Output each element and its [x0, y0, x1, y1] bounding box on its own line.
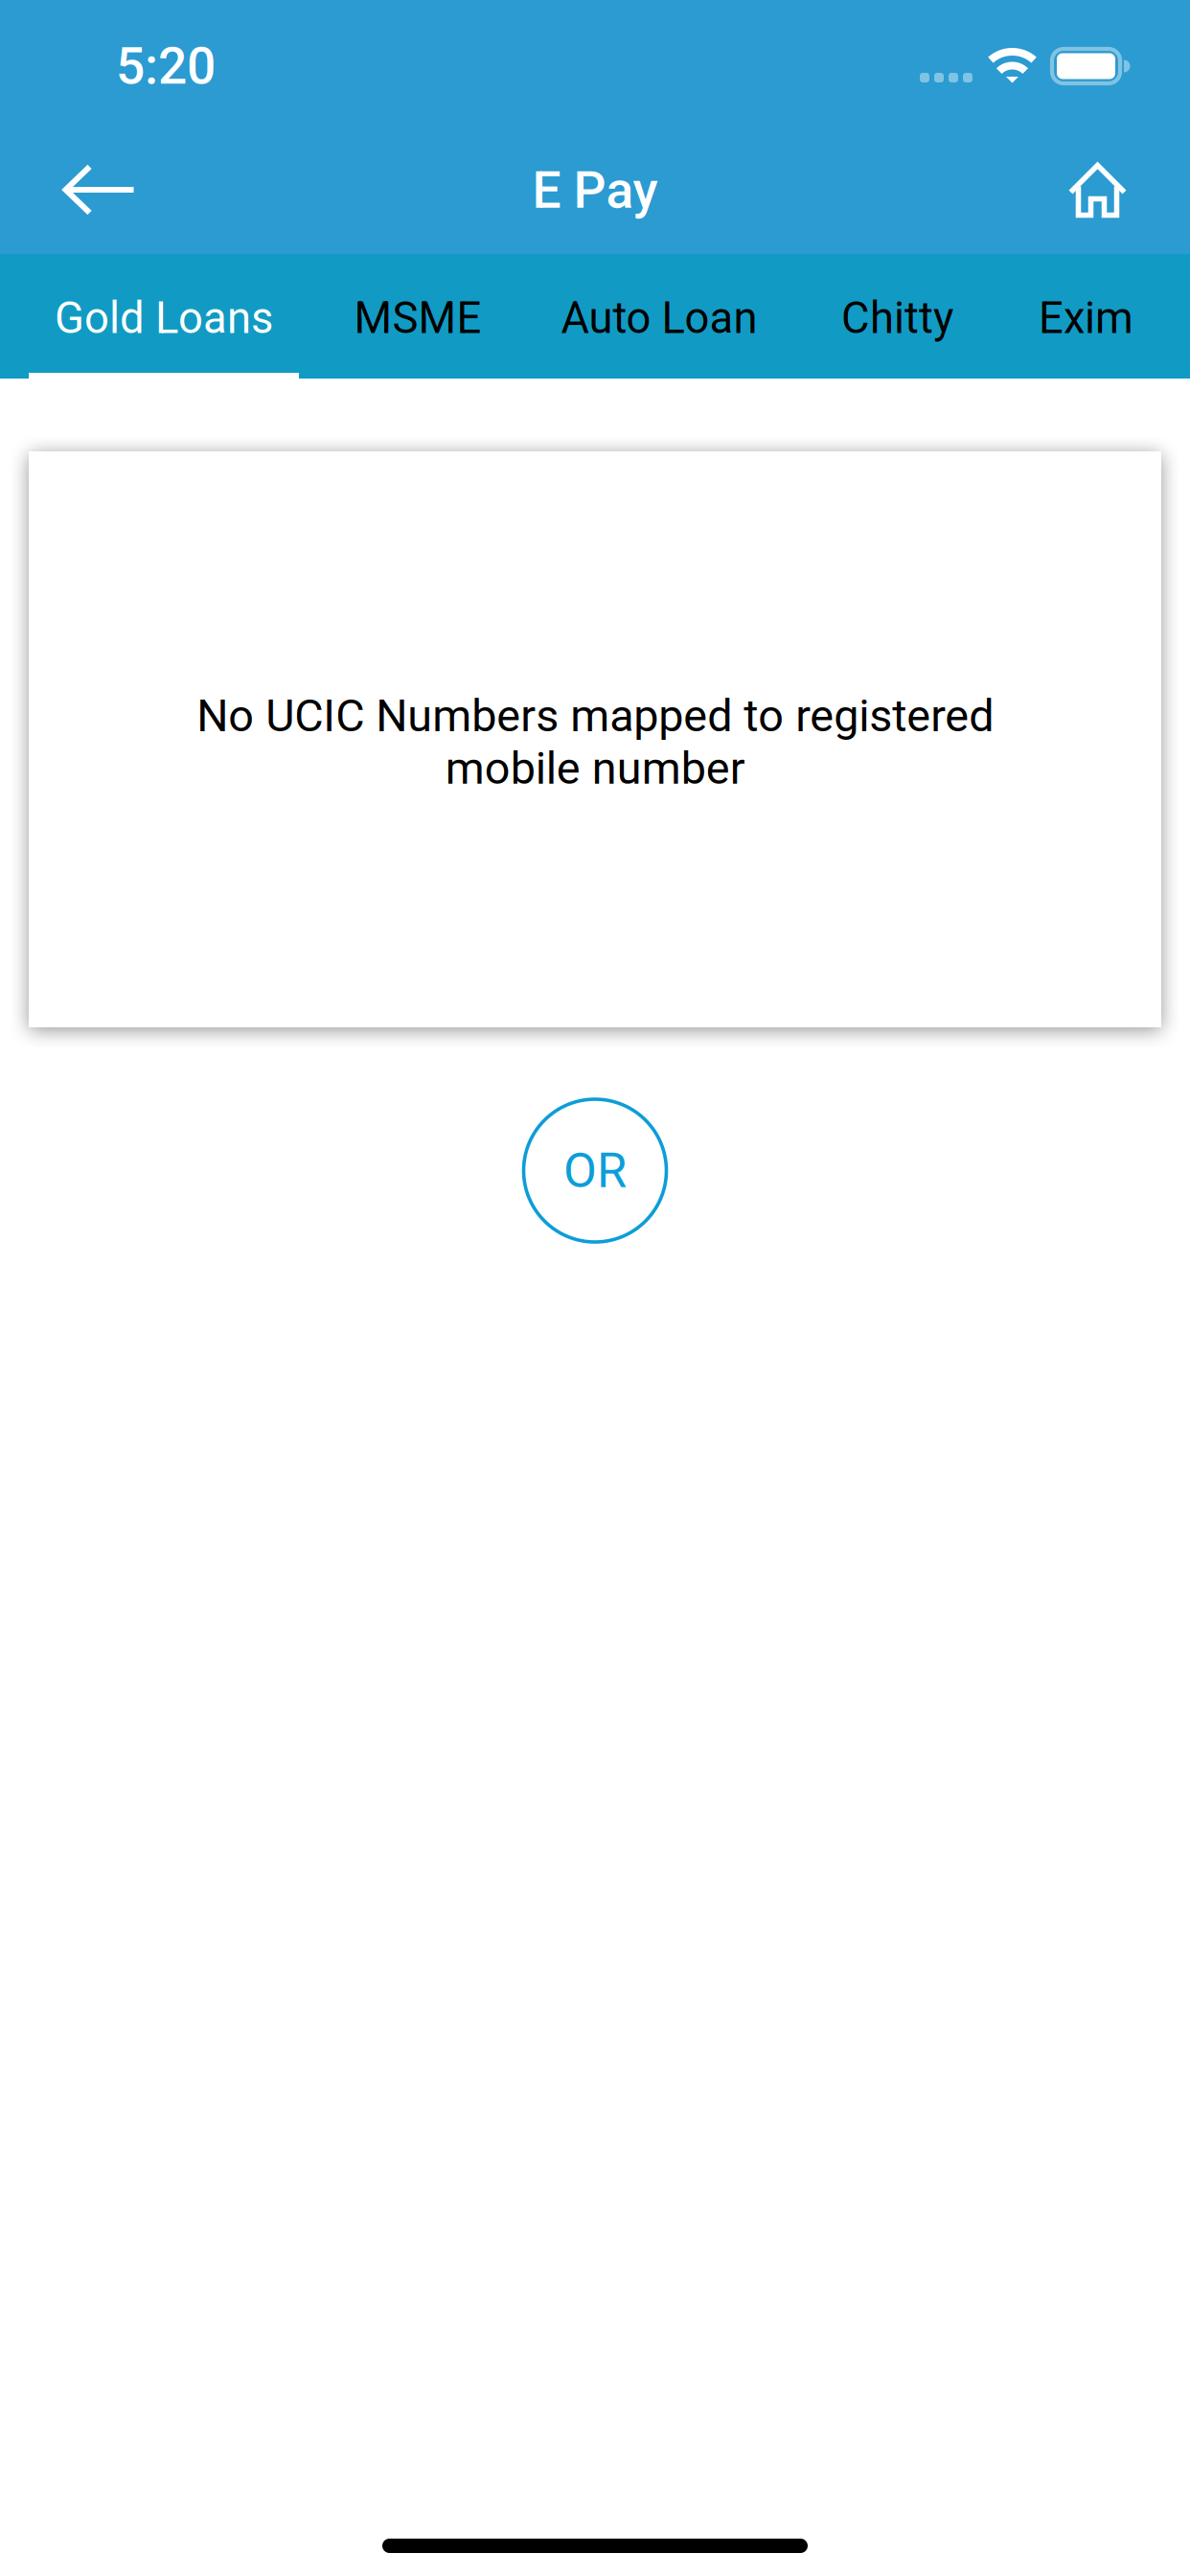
button[interactable]: Back [0, 126, 198, 254]
button[interactable]: Exim [1013, 254, 1159, 379]
button[interactable]: Gold Loans [29, 254, 299, 379]
staticText: No UCIC Numbers mapped to registered mob… [196, 690, 994, 795]
staticText: E Pay [532, 160, 658, 220]
button[interactable]: MSME [299, 254, 537, 379]
button[interactable]: OR — enter details manually [524, 1099, 666, 1242]
button[interactable]: Chitty [782, 254, 1013, 379]
button[interactable]: Auto Loan [537, 254, 782, 379]
button[interactable]: Home [1005, 126, 1190, 254]
staticText: Auto Loan [561, 293, 757, 344]
staticText: Exim [1039, 293, 1133, 344]
staticText: MSME [354, 293, 481, 344]
staticText: Chitty [841, 293, 953, 344]
staticText: 5:20 [116, 36, 216, 96]
staticText: OR [563, 1142, 627, 1199]
staticText: Gold Loans [55, 293, 273, 344]
